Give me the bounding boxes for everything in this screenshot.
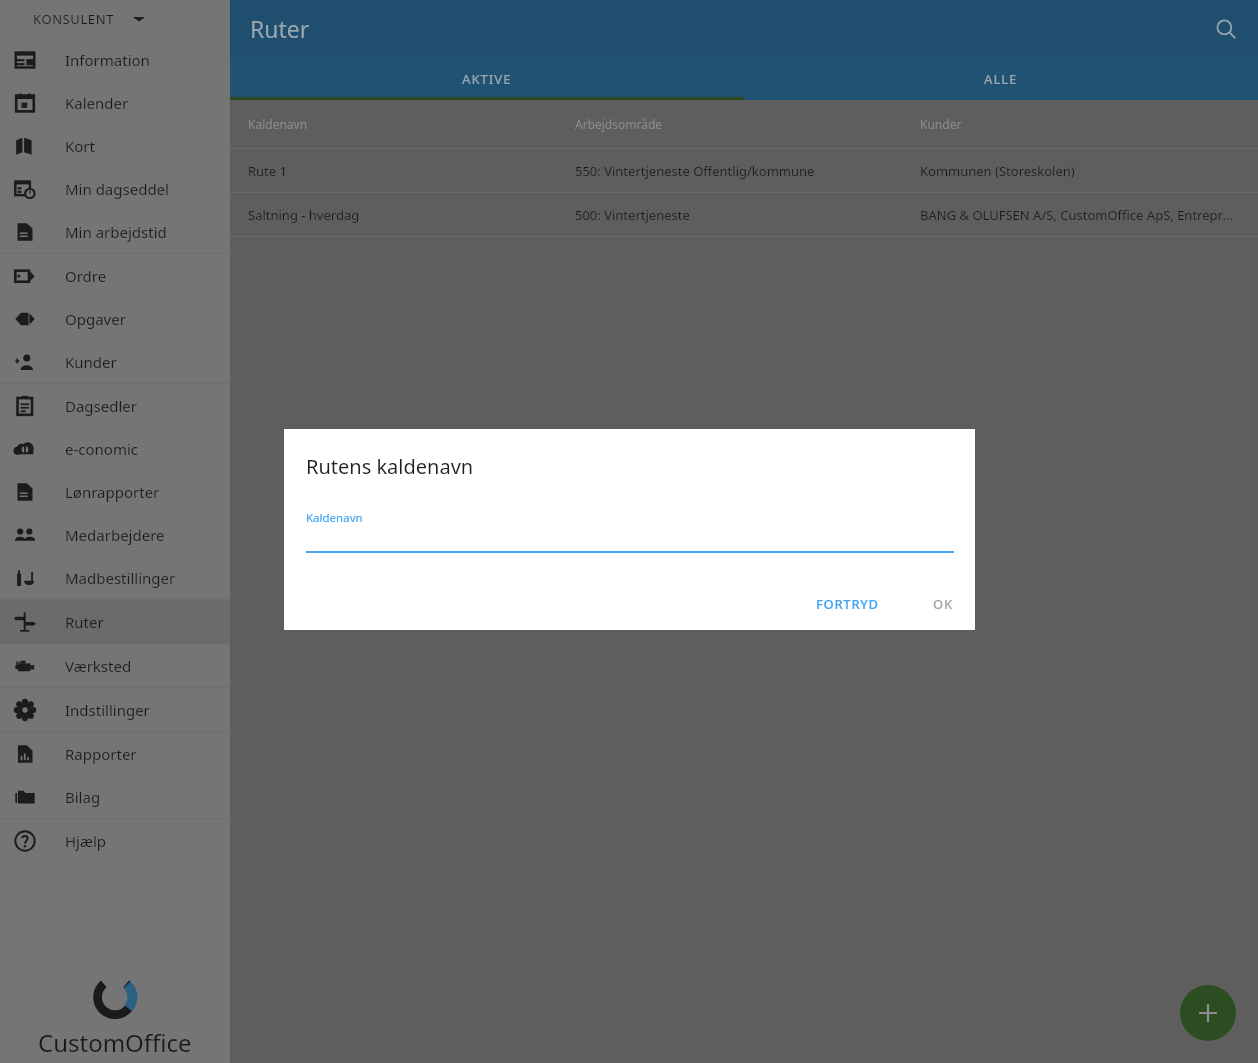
staticText: Saltning - hverdag	[248, 206, 360, 224]
staticText: Min arbejdstid	[65, 222, 167, 242]
staticText: BANG & OLUFSEN A/S, CustomOffice ApS, En…	[920, 206, 1240, 224]
button[interactable]: Madbestillinger	[0, 556, 230, 599]
button[interactable]: Dagsedler	[0, 384, 230, 427]
staticText: Information	[65, 50, 150, 70]
button[interactable]: ALLE	[744, 57, 1258, 100]
staticText: AKTIVE	[462, 70, 512, 88]
staticText: Kommunen (Storeskolen)	[920, 162, 1075, 180]
staticText: Ruter	[250, 13, 310, 44]
staticText: Hjælp	[65, 831, 107, 851]
staticText: Bilag	[65, 787, 101, 807]
button[interactable]: Opgaver	[0, 297, 230, 340]
staticText: Medarbejdere	[65, 525, 165, 545]
staticText: Rute 1	[248, 162, 287, 180]
button[interactable]: Lønrapporter	[0, 470, 230, 513]
staticText: Kalender	[65, 93, 129, 113]
staticText: Indstillinger	[65, 700, 150, 720]
button[interactable]: Indstillinger	[0, 688, 230, 731]
staticText: Lønrapporter	[65, 482, 160, 502]
staticText: Kaldenavn	[306, 510, 363, 526]
button[interactable]: Add route	[1180, 985, 1236, 1041]
staticText: Min dagseddel	[65, 179, 169, 199]
button[interactable]: Kalender	[0, 81, 230, 124]
staticText: FORTRYD	[816, 595, 879, 613]
staticText: Kaldenavn	[248, 116, 308, 132]
staticText: Ordre	[65, 266, 107, 286]
staticText: Rutens kaldenavn	[306, 453, 474, 480]
button[interactable]: Ruter	[0, 600, 230, 643]
staticText: KONSULENT	[33, 10, 115, 28]
staticText: e-conomic	[65, 439, 139, 459]
staticText: Dagsedler	[65, 396, 137, 416]
staticText: Kunder	[920, 116, 962, 132]
staticText: Kort	[65, 136, 95, 156]
button[interactable]: OK	[921, 586, 965, 622]
button[interactable]: Rapporter	[0, 732, 230, 775]
button[interactable]: Kunder	[0, 340, 230, 383]
button[interactable]: Min arbejdstid	[0, 210, 230, 253]
staticText: Madbestillinger	[65, 568, 176, 588]
staticText: ALLE	[984, 70, 1018, 88]
button[interactable]: Saltning - hverdag	[230, 193, 1258, 236]
staticText: CustomOffice	[38, 1026, 192, 1059]
button[interactable]: Ordre	[0, 254, 230, 297]
button[interactable]: Information	[0, 38, 230, 81]
button[interactable]: Hjælp	[0, 819, 230, 862]
button[interactable]: FORTRYD	[804, 586, 891, 622]
button[interactable]: Bilag	[0, 775, 230, 818]
staticText: Opgaver	[65, 309, 126, 329]
button[interactable]: KONSULENT	[0, 0, 230, 38]
button[interactable]: Rute 1	[230, 149, 1258, 192]
staticText: Arbejdsområde	[575, 116, 663, 132]
staticText: 550: Vintertjeneste Offentlig/kommune	[575, 162, 815, 180]
staticText: OK	[933, 595, 953, 613]
staticText: Kunder	[65, 352, 117, 372]
button[interactable]: Search	[1204, 7, 1248, 51]
button[interactable]: e-conomic	[0, 427, 230, 470]
button[interactable]: AKTIVE	[230, 57, 744, 100]
button[interactable]: Kort	[0, 124, 230, 167]
staticText: Værksted	[65, 656, 132, 676]
button[interactable]: Værksted	[0, 644, 230, 687]
staticText: 500: Vintertjeneste	[575, 206, 690, 224]
staticText: Ruter	[65, 612, 104, 632]
staticText: Rapporter	[65, 744, 137, 764]
button[interactable]: Min dagseddel	[0, 167, 230, 210]
button[interactable]: Medarbejdere	[0, 513, 230, 556]
